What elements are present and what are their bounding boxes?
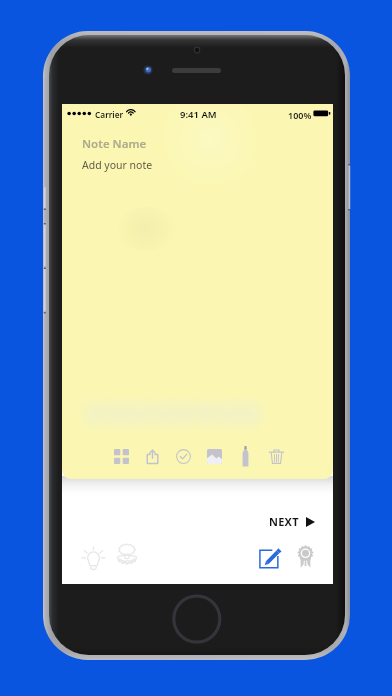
button[interactable]: Inspiration [111,537,143,569]
button[interactable]: Delete [261,443,292,469]
staticText: Add your note [82,158,153,172]
staticText: 9:41 AM [180,108,217,121]
button[interactable]: Ideas [77,540,109,572]
button[interactable]: Awards [289,540,321,572]
button[interactable]: Done [168,443,199,469]
button[interactable]: Insert image [199,443,230,469]
staticText: Carrier [95,109,124,120]
button[interactable]: Share [137,443,168,469]
button[interactable]: Compose note [255,542,285,572]
button[interactable]: Templates [106,443,137,469]
button[interactable]: Marker [230,443,261,469]
staticText: Note Name [82,136,147,152]
button[interactable]: NEXT [265,509,319,534]
staticText: 100% [288,109,312,121]
staticText: NEXT [269,514,299,529]
